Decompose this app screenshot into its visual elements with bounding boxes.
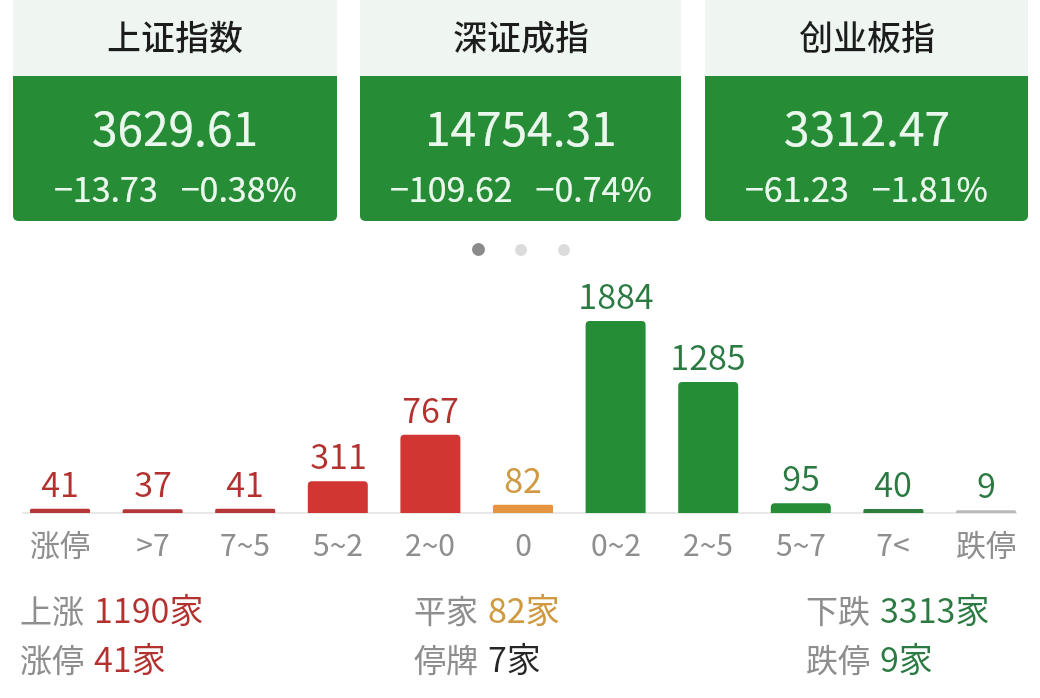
staticText: 9 bbox=[977, 459, 996, 508]
button[interactable]: 上证指数 bbox=[13, 0, 337, 221]
staticText: 311 bbox=[310, 430, 367, 479]
staticText: 停牌 bbox=[414, 635, 479, 681]
staticText: 跌停 bbox=[806, 635, 871, 681]
staticText: 上涨 bbox=[20, 586, 85, 632]
staticText: 41家 bbox=[94, 633, 166, 682]
staticText: 7家 bbox=[488, 633, 541, 682]
staticText: −109.62 −0.74% bbox=[390, 163, 652, 212]
staticText: 2~0 bbox=[405, 521, 455, 564]
staticText: 7~5 bbox=[220, 521, 270, 564]
button[interactable]: >7 37 bbox=[107, 458, 199, 556]
staticText: 涨停 bbox=[20, 635, 85, 681]
button[interactable]: 0 82 bbox=[477, 454, 569, 556]
button[interactable]: 跌停 9 bbox=[940, 459, 1032, 556]
staticText: 3629.61 bbox=[92, 93, 258, 160]
staticText: 下跌 bbox=[806, 586, 871, 632]
staticText: 3313家 bbox=[880, 584, 990, 633]
staticText: 涨停 bbox=[30, 521, 90, 564]
staticText: 0 bbox=[515, 521, 532, 564]
button[interactable]: 5~2 311 bbox=[292, 430, 384, 556]
staticText: 40 bbox=[874, 458, 912, 507]
staticText: 深证成指 bbox=[453, 11, 589, 60]
staticText: 1285 bbox=[670, 331, 746, 380]
staticText: 5~2 bbox=[313, 521, 363, 564]
staticText: 41 bbox=[226, 458, 264, 507]
staticText: −13.73 −0.38% bbox=[54, 163, 297, 212]
staticText: 1884 bbox=[578, 270, 654, 319]
staticText: 82 bbox=[504, 454, 542, 503]
staticText: 跌停 bbox=[956, 521, 1016, 564]
other: Page indicator bbox=[472, 243, 570, 256]
button[interactable]: 0~2 1884 bbox=[570, 270, 662, 556]
button[interactable]: 2~0 767 bbox=[384, 384, 476, 556]
button[interactable]: 创业板指 bbox=[705, 0, 1028, 221]
staticText: >7 bbox=[136, 521, 170, 564]
button[interactable]: 7< 40 bbox=[847, 458, 939, 556]
staticText: 上证指数 bbox=[107, 11, 243, 60]
button[interactable]: 上涨 bbox=[20, 584, 204, 682]
staticText: 82家 bbox=[488, 584, 560, 633]
staticText: 0~2 bbox=[591, 521, 641, 564]
staticText: 14754.31 bbox=[425, 93, 617, 160]
staticText: 5~7 bbox=[776, 521, 826, 564]
staticText: −61.23 −1.81% bbox=[745, 163, 988, 212]
staticText: 平家 bbox=[414, 586, 479, 632]
staticText: 767 bbox=[402, 384, 459, 433]
button[interactable]: 平家 bbox=[414, 584, 560, 682]
staticText: 创业板指 bbox=[799, 11, 935, 60]
staticText: 95 bbox=[782, 452, 820, 501]
staticText: 2~5 bbox=[683, 521, 733, 564]
staticText: 37 bbox=[134, 458, 172, 507]
button[interactable]: 深证成指 bbox=[360, 0, 681, 221]
button[interactable]: 涨停 41 bbox=[14, 458, 106, 556]
button[interactable]: 7~5 41 bbox=[199, 458, 291, 556]
staticText: 3312.47 bbox=[784, 93, 950, 160]
staticText: 41 bbox=[41, 458, 79, 507]
staticText: 1190家 bbox=[94, 584, 204, 633]
button[interactable]: 2~5 1285 bbox=[662, 331, 754, 556]
button[interactable]: 下跌 bbox=[806, 584, 990, 682]
staticText: 9家 bbox=[880, 633, 933, 682]
button[interactable]: 5~7 95 bbox=[755, 452, 847, 556]
staticText: 7< bbox=[876, 521, 910, 564]
